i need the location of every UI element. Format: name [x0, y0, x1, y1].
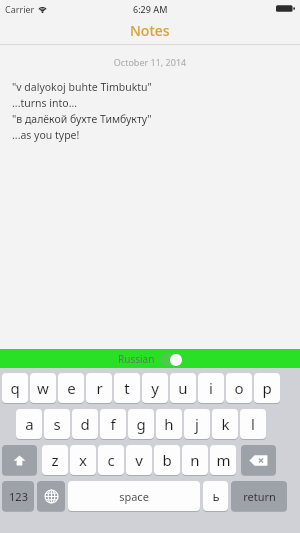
button[interactable]: t	[114, 373, 140, 403]
button[interactable]: b	[154, 445, 180, 475]
button[interactable]: h	[156, 409, 182, 439]
button[interactable]: Switch keyboard	[37, 481, 65, 511]
button[interactable]: d	[72, 409, 98, 439]
button[interactable]: u	[170, 373, 196, 403]
button[interactable]: space	[68, 481, 200, 511]
button[interactable]: a	[16, 409, 42, 439]
button[interactable]: q	[2, 373, 28, 403]
button[interactable]: s	[44, 409, 70, 439]
staticText: f	[110, 414, 116, 434]
button[interactable]: Backspace	[241, 445, 276, 475]
staticText: o	[234, 378, 244, 398]
staticText: space	[119, 489, 149, 504]
button[interactable]: z	[42, 445, 68, 475]
staticText: ь	[212, 487, 220, 505]
staticText: z	[51, 450, 59, 470]
staticText: ...as you type!	[12, 128, 80, 142]
staticText: n	[190, 450, 200, 470]
staticText: k	[221, 414, 230, 434]
staticText: Carrier	[5, 3, 35, 15]
staticText: g	[136, 414, 146, 434]
button[interactable]: ь	[203, 481, 228, 511]
button[interactable]: j	[184, 409, 210, 439]
button[interactable]: l	[240, 409, 266, 439]
staticText: "v dalyokoj buhte Timbuktu"	[12, 80, 152, 94]
staticText: q	[10, 378, 20, 398]
button[interactable]: c	[98, 445, 124, 475]
button[interactable]: k	[212, 409, 238, 439]
button[interactable]: p	[254, 373, 280, 403]
staticText: l	[251, 414, 255, 434]
button[interactable]: x	[70, 445, 96, 475]
staticText: 6:29 AM	[133, 3, 168, 15]
staticText: 123	[9, 489, 28, 504]
button[interactable]: v	[126, 445, 152, 475]
staticText: v	[135, 450, 143, 470]
staticText: d	[80, 414, 90, 434]
button[interactable]: return	[231, 481, 287, 511]
staticText: j	[195, 414, 199, 434]
button[interactable]: Notes	[130, 21, 170, 40]
button[interactable]: i	[198, 373, 224, 403]
button[interactable]: y	[142, 373, 168, 403]
staticText: i	[209, 378, 213, 398]
button[interactable]: e	[58, 373, 84, 403]
button[interactable]: Russian	[0, 349, 300, 368]
button[interactable]: n	[182, 445, 208, 475]
staticText: a	[25, 414, 34, 434]
staticText: y	[151, 378, 159, 398]
button[interactable]: f	[100, 409, 126, 439]
staticText: t	[124, 378, 130, 398]
button[interactable]: Shift	[2, 445, 37, 475]
staticText: w	[37, 378, 49, 398]
staticText: r	[96, 378, 103, 398]
button[interactable]: w	[30, 373, 56, 403]
button[interactable]: m	[210, 445, 236, 475]
staticText: x	[79, 450, 87, 470]
staticText: b	[162, 450, 172, 470]
button[interactable]: o	[226, 373, 252, 403]
staticText: u	[178, 378, 188, 398]
staticText: ...turns into...	[12, 96, 78, 110]
staticText: s	[53, 414, 61, 434]
button[interactable]: 123	[2, 481, 34, 511]
staticText: Russian	[118, 352, 155, 366]
staticText: h	[164, 414, 174, 434]
button[interactable]: g	[128, 409, 154, 439]
button[interactable]: r	[86, 373, 112, 403]
staticText: p	[262, 378, 272, 398]
staticText: return	[243, 489, 276, 504]
staticText: m	[216, 450, 231, 470]
staticText: October 11, 2014	[0, 56, 300, 68]
staticText: "в далёкой бухте Тимбукту"	[12, 112, 152, 126]
staticText: c	[107, 450, 115, 470]
staticText: e	[67, 378, 76, 398]
